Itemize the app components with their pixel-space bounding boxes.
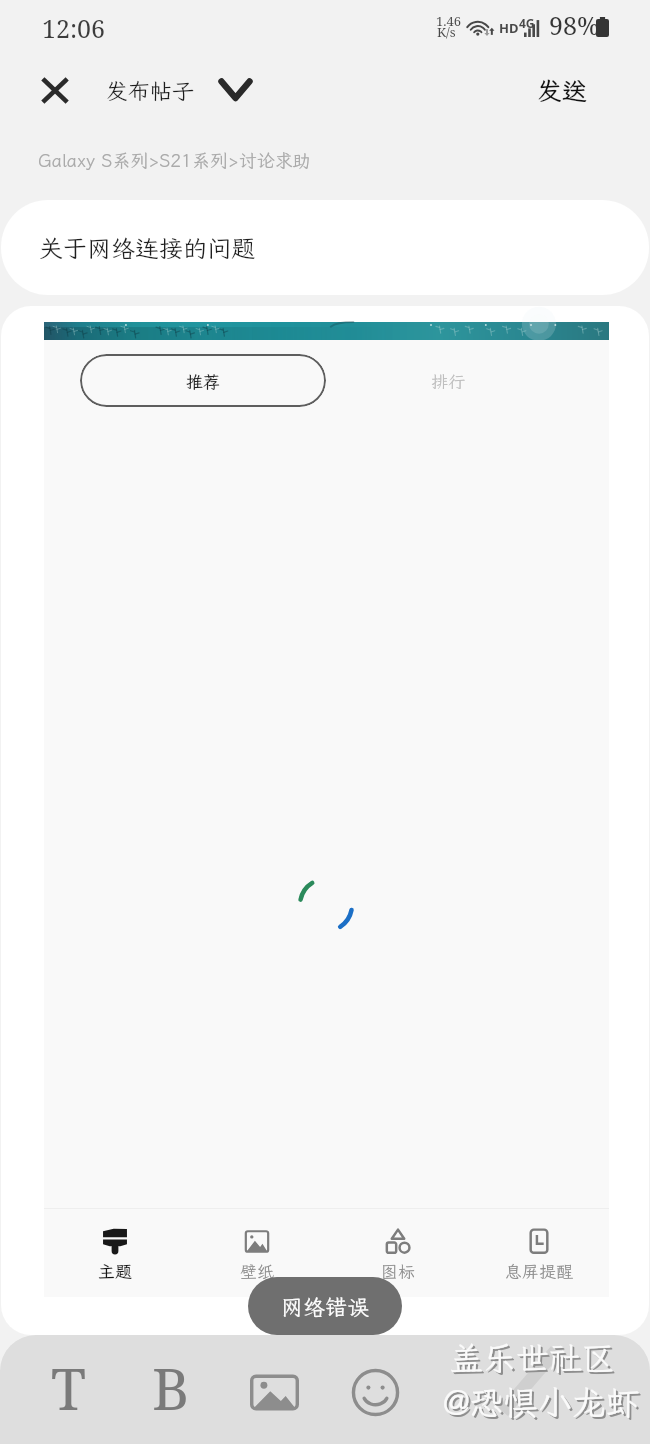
staticText: 主题 [98, 1260, 132, 1282]
staticText: 壁纸 [240, 1260, 274, 1282]
button[interactable]: 排行 [388, 354, 508, 407]
button[interactable]: 图标 [327, 1209, 468, 1297]
button[interactable]: 推荐 [1, 306, 649, 1335]
staticText: B [152, 1349, 190, 1417]
staticText: 1.46 [436, 12, 462, 30]
staticText: 12:06 [42, 11, 106, 45]
button[interactable]: 推荐 [80, 354, 326, 407]
staticText: 排行 [431, 370, 465, 392]
button[interactable]: 发送 [514, 66, 610, 114]
button[interactable]: Galaxy S系列>S21系列>讨论求助 [30, 141, 319, 179]
button[interactable]: Insert image [240, 1358, 308, 1426]
staticText: @恐惧小龙虾 [445, 1382, 642, 1427]
staticText: 98% [549, 8, 600, 42]
staticText: 网络错误 [281, 1292, 370, 1321]
staticText: 发送 [537, 74, 588, 107]
button[interactable]: 发布帖子 [106, 66, 252, 114]
staticText: K/s [437, 23, 456, 41]
staticText: 息屏提醒 [505, 1260, 573, 1282]
staticText: 盖乐世社区 [450, 1336, 615, 1379]
button[interactable]: Emoji [341, 1358, 409, 1426]
button[interactable]: Close [25, 65, 85, 115]
staticText: 4G [519, 15, 535, 31]
staticText: 发布帖子 [106, 76, 195, 105]
staticText: 推荐 [186, 370, 220, 392]
staticText: 盖乐世社区 [452, 1338, 617, 1381]
button[interactable]: 壁纸 [186, 1209, 327, 1297]
staticText: HD [499, 19, 519, 37]
button[interactable]: 主题 [44, 1209, 186, 1297]
staticText: @恐惧小龙虾 [443, 1380, 640, 1425]
button[interactable]: Text style [34, 1349, 102, 1417]
staticText: T [51, 1349, 86, 1417]
staticText: 关于网络连接的问题 [39, 232, 255, 264]
button[interactable]: 关于网络连接的问题 [1, 200, 649, 295]
button[interactable]: 息屏提醒 [468, 1209, 609, 1297]
button[interactable]: Bold [137, 1349, 205, 1417]
staticText: Galaxy S系列>S21系列>讨论求助 [38, 148, 311, 172]
staticText: 图标 [381, 1260, 415, 1282]
